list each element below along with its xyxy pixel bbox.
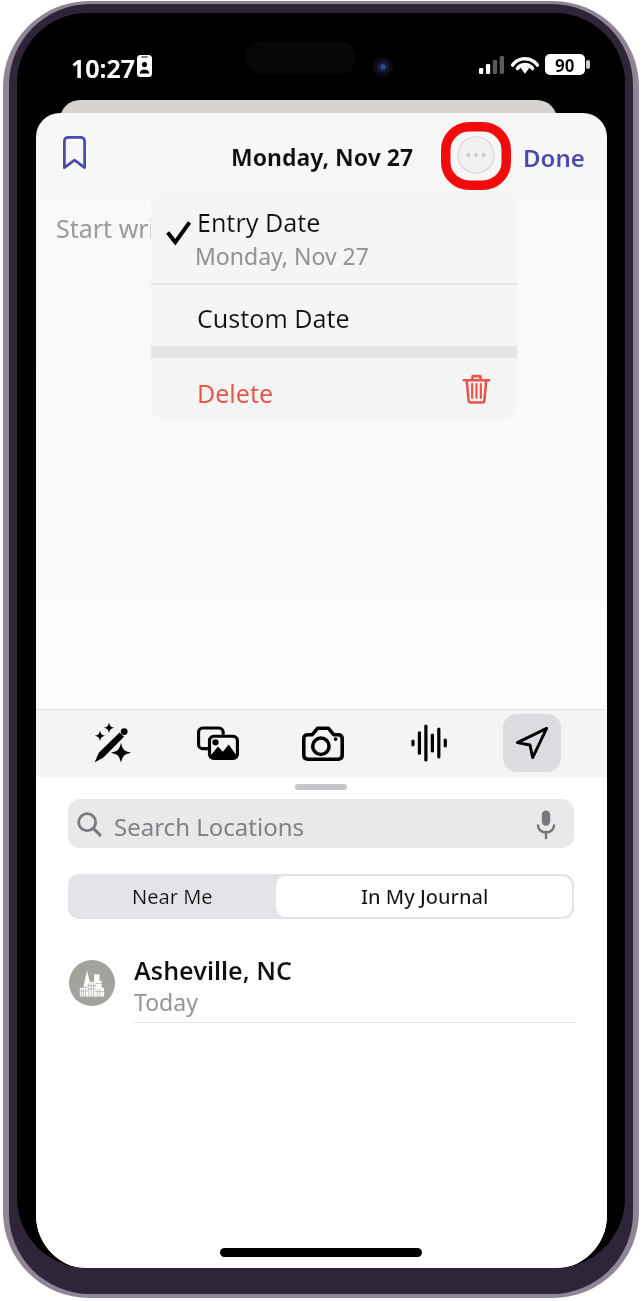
button[interactable]: Bookmark bbox=[52, 130, 96, 174]
staticText: Start writing bbox=[56, 211, 202, 245]
staticText: Entry Date bbox=[197, 205, 321, 239]
staticText: 90 bbox=[555, 54, 575, 75]
button[interactable]: Done bbox=[523, 141, 585, 174]
staticText: In My Journal bbox=[361, 883, 489, 910]
button[interactable]: Camera bbox=[294, 714, 352, 772]
button[interactable]: More options bbox=[457, 136, 495, 174]
button[interactable]: Delete bbox=[151, 358, 517, 421]
staticText: Delete bbox=[197, 376, 274, 410]
staticText: Asheville, NC bbox=[134, 953, 292, 987]
staticText: 10:27 bbox=[71, 51, 136, 85]
button[interactable]: In My Journal bbox=[276, 874, 574, 919]
staticText: Custom Date bbox=[197, 301, 350, 335]
button[interactable]: Near Me bbox=[68, 874, 276, 919]
staticText: Today bbox=[134, 986, 198, 1017]
button[interactable]: Photos bbox=[189, 714, 247, 772]
staticText: Monday, Nov 27 bbox=[195, 240, 369, 271]
staticText: Monday, Nov 27 bbox=[231, 141, 414, 172]
button[interactable]: Asheville, NC bbox=[68, 948, 576, 1022]
button[interactable]: Location bbox=[503, 714, 561, 772]
button[interactable]: Search Locations bbox=[68, 799, 574, 848]
button[interactable]: Audio recording bbox=[398, 714, 456, 772]
staticText: Near Me bbox=[132, 883, 213, 910]
staticText: Done bbox=[523, 141, 585, 174]
staticText: Search Locations bbox=[114, 810, 304, 843]
button[interactable]: Entry Date bbox=[151, 190, 517, 283]
button[interactable]: Custom Date bbox=[151, 285, 517, 346]
button[interactable]: Magic suggestions bbox=[84, 714, 142, 772]
